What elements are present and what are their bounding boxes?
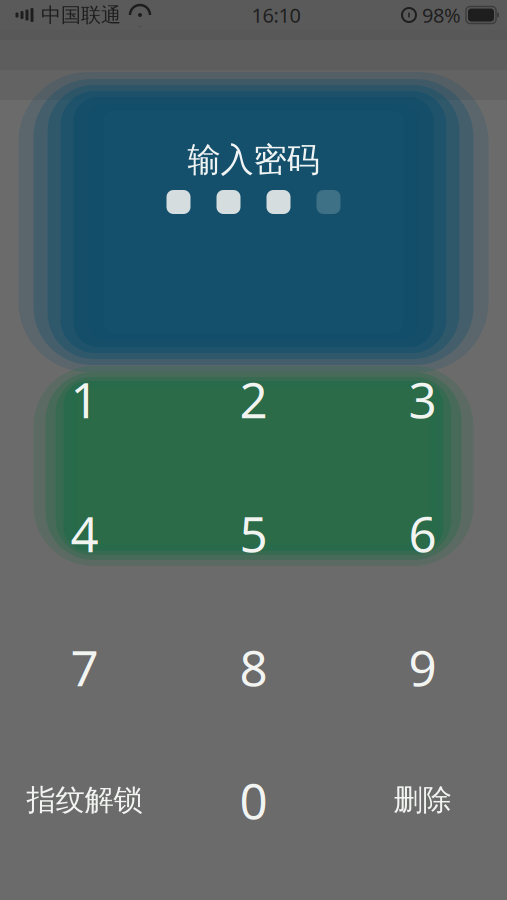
staticText: 9	[408, 634, 436, 700]
staticText: 输入密码	[187, 139, 319, 180]
button[interactable]: 2	[169, 333, 338, 465]
staticText: 8	[239, 634, 267, 700]
button[interactable]: 指纹解锁	[0, 734, 169, 866]
staticText: 2	[239, 366, 267, 432]
button[interactable]: 7	[0, 601, 169, 733]
staticText: 1	[70, 366, 98, 432]
staticText: 7	[70, 634, 98, 700]
button[interactable]: 9	[338, 601, 507, 733]
staticText: 98%	[422, 2, 461, 28]
button[interactable]: 3	[338, 333, 507, 465]
staticText: 中国联通	[41, 3, 121, 27]
button[interactable]: 删除	[338, 734, 507, 866]
button[interactable]: 6	[338, 467, 507, 599]
button[interactable]: 4	[0, 467, 169, 599]
staticText: 16:10	[251, 2, 300, 28]
button[interactable]: 5	[169, 467, 338, 599]
staticText: 删除	[393, 782, 451, 818]
button[interactable]: 0	[169, 734, 338, 866]
staticText: 3	[408, 366, 436, 432]
button[interactable]: 8	[169, 601, 338, 733]
staticText: 6	[408, 500, 436, 566]
staticText: 0	[239, 767, 267, 833]
button[interactable]: 1	[0, 333, 169, 465]
staticText: 指纹解锁	[26, 782, 142, 818]
staticText: 5	[239, 500, 267, 566]
staticText: 4	[70, 500, 98, 566]
